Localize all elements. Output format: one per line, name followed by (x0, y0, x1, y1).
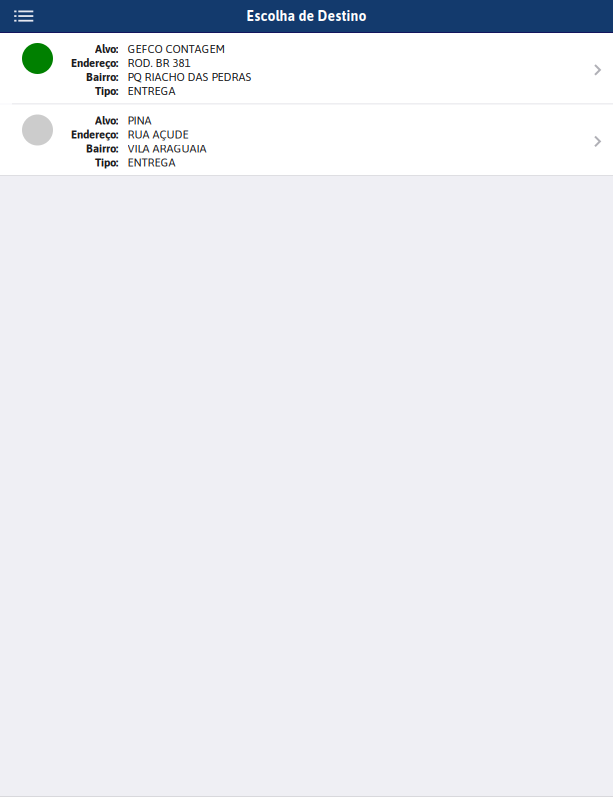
button[interactable]: Alvo: (0, 33, 613, 103)
staticText: Alvo: (95, 114, 118, 127)
staticText: Escolha de Destino (246, 8, 366, 24)
staticText: ROD. BR 381 (127, 56, 190, 69)
staticText: VILA ARAGUAIA (127, 142, 206, 155)
staticText: PINA (127, 114, 151, 127)
staticText: Bairro: (86, 142, 118, 155)
staticText: ENTREGA (127, 156, 175, 169)
staticText: GEFCO CONTAGEM (127, 42, 225, 55)
staticText: Tipo: (95, 156, 118, 169)
staticText: RUA AÇUDE (127, 128, 188, 141)
button[interactable]: Alvo: (0, 104, 613, 175)
staticText: Bairro: (86, 70, 118, 83)
staticText: PQ RIACHO DAS PEDRAS (127, 70, 251, 83)
staticText: Tipo: (95, 84, 118, 97)
staticText: Endereço: (71, 56, 118, 69)
button[interactable]: Menu (0, 0, 34, 31)
staticText: Alvo: (95, 42, 118, 55)
staticText: Endereço: (71, 128, 118, 141)
staticText: ENTREGA (127, 84, 175, 97)
